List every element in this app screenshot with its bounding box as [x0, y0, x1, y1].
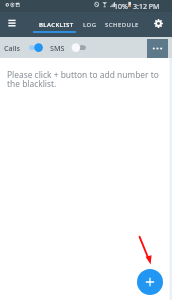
- button[interactable]: BLACKLIST: [36, 14, 76, 35]
- button[interactable]: Add number: [137, 269, 163, 295]
- button[interactable]: LOG: [70, 14, 110, 35]
- staticText: 3:12 PM: [133, 2, 160, 12]
- staticText: LOG: [83, 21, 97, 29]
- staticText: 10%: [114, 2, 128, 12]
- staticText: Please click + button to add number to t…: [7, 69, 161, 89]
- button[interactable]: SCHEDULE: [102, 14, 142, 35]
- staticText: BLACKLIST: [39, 21, 74, 29]
- button[interactable]: Calls: [0, 37, 24, 58]
- button[interactable]: Menu: [0, 12, 24, 37]
- button[interactable]: More options: [147, 39, 168, 58]
- button[interactable]: SMS: [46, 37, 68, 58]
- staticText: Calls: [4, 43, 21, 53]
- staticText: SCHEDULE: [105, 21, 139, 29]
- button[interactable]: Settings: [148, 12, 170, 37]
- staticText: SMS: [50, 43, 65, 53]
